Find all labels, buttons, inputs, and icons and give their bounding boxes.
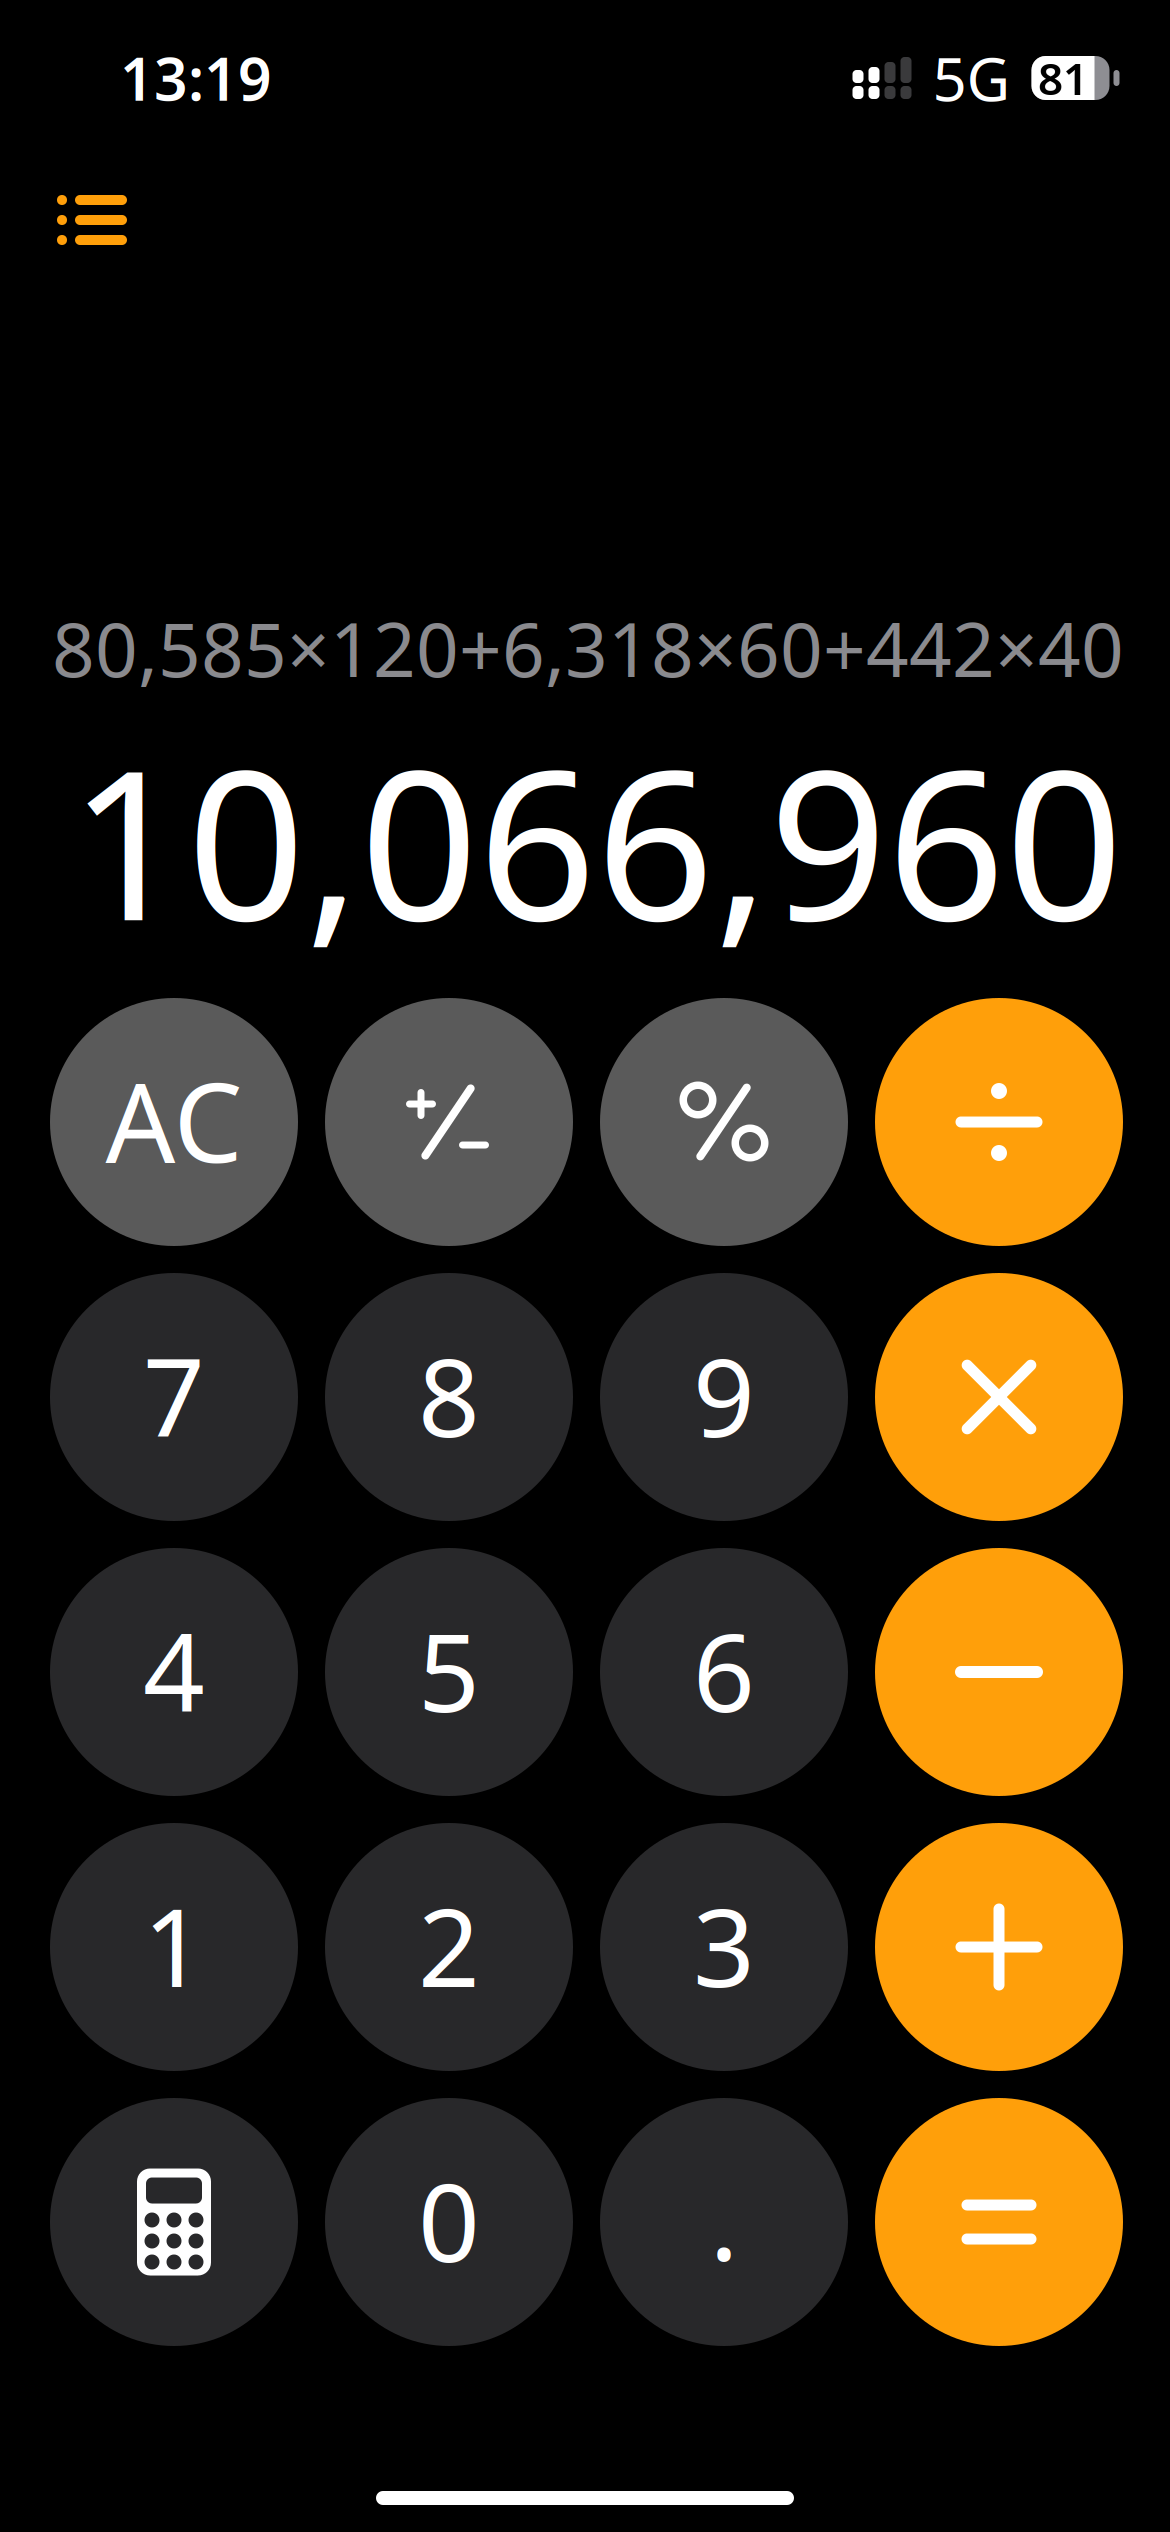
staticText: 9 bbox=[693, 1323, 755, 1467]
button[interactable]: Plus Minus bbox=[325, 998, 573, 1246]
button[interactable]: 2 bbox=[325, 1823, 573, 2071]
button[interactable]: 6 bbox=[600, 1548, 848, 1796]
staticText: 4 bbox=[143, 1598, 205, 1742]
staticText: 7 bbox=[143, 1323, 205, 1467]
button[interactable]: Plus bbox=[875, 1823, 1123, 2071]
button[interactable]: 9 bbox=[600, 1273, 848, 1521]
button[interactable]: . bbox=[600, 2098, 848, 2346]
button[interactable]: Minus bbox=[875, 1548, 1123, 1796]
staticText: 81 bbox=[1038, 49, 1088, 107]
button[interactable]: 3 bbox=[600, 1823, 848, 2071]
button[interactable]: History bbox=[57, 160, 197, 280]
staticText: AC bbox=[105, 1047, 242, 1193]
button[interactable]: 0 bbox=[325, 2098, 573, 2346]
button[interactable]: Equals bbox=[875, 2098, 1123, 2346]
button[interactable]: 8 bbox=[325, 1273, 573, 1521]
staticText: 0 bbox=[418, 2148, 480, 2292]
button[interactable]: 5 bbox=[325, 1548, 573, 1796]
staticText: 1 bbox=[143, 1873, 205, 2017]
staticText: 10,066,960 bbox=[69, 703, 1123, 977]
button[interactable]: 1 bbox=[50, 1823, 298, 2071]
staticText: 8 bbox=[418, 1323, 480, 1467]
staticText: 2 bbox=[418, 1873, 480, 2017]
staticText: 5 bbox=[418, 1598, 480, 1742]
staticText: 5G bbox=[932, 38, 1010, 118]
button[interactable]: Divide bbox=[875, 998, 1123, 1246]
staticText: 3 bbox=[693, 1873, 755, 2017]
button[interactable]: Calculator bbox=[50, 2098, 298, 2346]
staticText: 6 bbox=[693, 1598, 755, 1742]
button[interactable]: Multiply bbox=[875, 1273, 1123, 1521]
button[interactable]: Percent bbox=[600, 998, 848, 1246]
staticText: . bbox=[709, 2146, 738, 2290]
button[interactable]: AC bbox=[50, 998, 298, 1246]
button[interactable]: 4 bbox=[50, 1548, 298, 1796]
staticText: 80,585×120+6,318×60+442×40 bbox=[52, 598, 1124, 698]
staticText: 13:19 bbox=[120, 39, 272, 117]
button[interactable]: 7 bbox=[50, 1273, 298, 1521]
